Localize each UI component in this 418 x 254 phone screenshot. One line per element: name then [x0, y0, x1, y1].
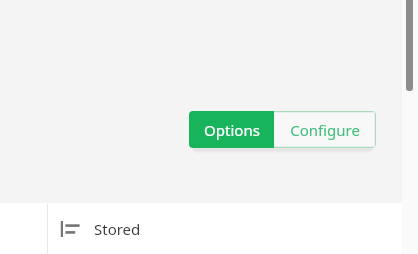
button[interactable]: Options [189, 111, 274, 148]
button[interactable]: Configure [274, 111, 376, 148]
button[interactable]: Stored [48, 204, 402, 254]
staticText: Stored [94, 219, 141, 239]
staticText: Configure [290, 120, 360, 140]
other: Scroll position [406, 0, 413, 91]
staticText: Options [204, 120, 260, 140]
other: Stored [60, 219, 80, 239]
